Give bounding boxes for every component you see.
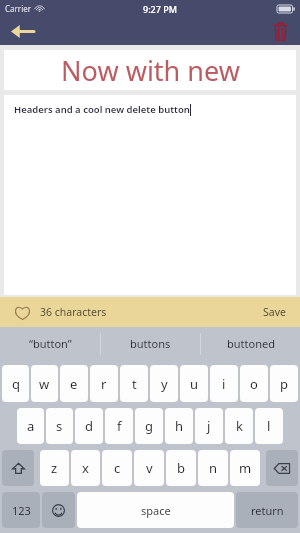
staticText: 36 characters [40, 305, 107, 319]
button[interactable]: 123 [2, 492, 40, 528]
staticText: h [175, 417, 184, 435]
staticText: d [85, 417, 93, 435]
button[interactable]: b [166, 450, 196, 486]
staticText: q [12, 375, 20, 393]
staticText: z [51, 459, 58, 477]
staticText: f [117, 417, 122, 435]
staticText: Now with new [61, 52, 240, 89]
button[interactable]: m [230, 450, 260, 486]
button[interactable]: k [225, 408, 253, 444]
staticText: n [209, 459, 218, 477]
button[interactable]: h [165, 408, 193, 444]
staticText: k [236, 417, 243, 435]
staticText: Save [263, 305, 286, 319]
button[interactable]: x [71, 450, 100, 486]
button[interactable]: Now with new [4, 50, 296, 90]
staticText: t [132, 375, 137, 393]
button[interactable]: c [102, 450, 132, 486]
staticText: e [70, 375, 78, 393]
staticText: v [146, 459, 153, 477]
staticText: Carrier [5, 3, 32, 14]
staticText: m [239, 459, 252, 477]
staticText: u [190, 375, 199, 393]
button[interactable]: q [2, 365, 29, 402]
button[interactable]: Favourite [12, 302, 32, 322]
staticText: 9:27 PM [143, 3, 177, 15]
button[interactable]: d [75, 408, 103, 444]
button[interactable]: p [270, 365, 298, 402]
staticText: j [207, 417, 211, 435]
staticText: a [27, 417, 35, 435]
staticText: c [114, 459, 121, 477]
staticText: w [39, 375, 50, 393]
button[interactable]: Shift [2, 450, 34, 486]
staticText: “button” [29, 336, 72, 351]
staticText: o [250, 375, 258, 393]
button[interactable]: u [180, 365, 208, 402]
staticText: y [161, 375, 168, 393]
staticText: x [82, 459, 89, 477]
button[interactable]: n [198, 450, 228, 486]
staticText: l [267, 417, 271, 435]
staticText: buttons [130, 336, 171, 351]
button[interactable]: buttoned [201, 327, 300, 360]
button[interactable]: e [60, 365, 88, 402]
button[interactable]: Back [5, 17, 39, 45]
button[interactable]: “button” [0, 327, 100, 360]
button[interactable]: Save [263, 305, 286, 319]
staticText: p [280, 375, 288, 393]
button[interactable]: g [135, 408, 163, 444]
staticText: b [177, 459, 185, 477]
button[interactable]: y [150, 365, 178, 402]
staticText: i [222, 375, 226, 393]
staticText: space [141, 503, 171, 518]
button[interactable]: return [236, 492, 298, 528]
button[interactable]: 36 characters [40, 305, 261, 319]
staticText: Headers and a cool new delete button [14, 103, 190, 116]
button[interactable]: w [31, 365, 58, 402]
button[interactable]: Headers and a cool new delete button [4, 95, 296, 295]
button[interactable]: f [105, 408, 133, 444]
button[interactable]: s [46, 408, 73, 444]
button[interactable]: l [255, 408, 283, 444]
staticText: return [251, 503, 284, 518]
staticText: buttoned [227, 336, 275, 351]
staticText: s [56, 417, 63, 435]
button[interactable]: space [77, 492, 234, 528]
staticText: g [145, 417, 153, 435]
button[interactable]: j [195, 408, 223, 444]
button[interactable]: i [210, 365, 238, 402]
button[interactable]: Backspace [266, 450, 298, 486]
button[interactable]: o [240, 365, 268, 402]
button[interactable]: z [40, 450, 69, 486]
button[interactable]: a [17, 408, 44, 444]
button[interactable]: v [134, 450, 164, 486]
button[interactable]: t [120, 365, 148, 402]
button[interactable]: buttons [101, 327, 200, 360]
button[interactable]: Emoji [42, 492, 75, 528]
staticText: r [101, 375, 107, 393]
button[interactable]: r [90, 365, 118, 402]
button[interactable]: Delete note [265, 17, 295, 45]
staticText: 123 [12, 503, 31, 518]
